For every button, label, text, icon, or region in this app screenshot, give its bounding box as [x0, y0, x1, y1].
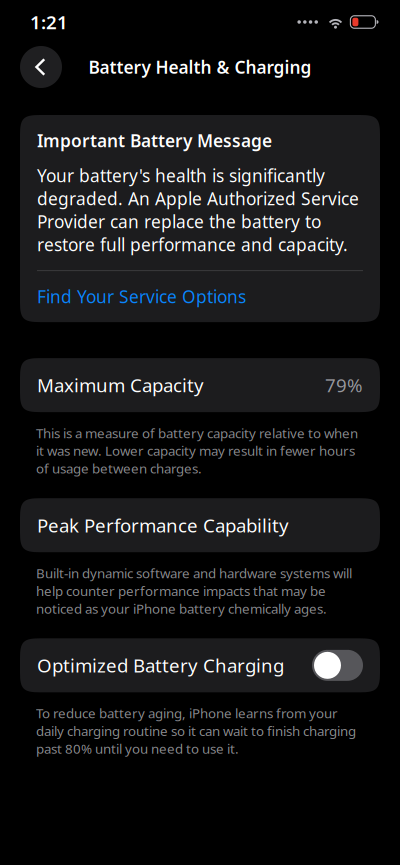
staticText: Important Battery Message — [37, 129, 272, 152]
staticText: Battery Health & Charging — [88, 55, 311, 78]
button[interactable]: Optimized Battery Charging — [0, 638, 400, 692]
staticText: Optimized Battery Charging — [37, 653, 284, 678]
staticText: Built-in dynamic software and hardware s… — [36, 564, 352, 617]
staticText: Find Your Service Options — [37, 285, 246, 308]
staticText: 79% — [325, 373, 363, 397]
button[interactable]: Find Your Service Options — [37, 285, 363, 308]
staticText: Maximum Capacity — [37, 373, 204, 397]
button[interactable]: Back — [20, 46, 62, 88]
staticText: Peak Performance Capability — [37, 513, 289, 538]
staticText: This is a measure of battery capacity re… — [36, 424, 358, 477]
staticText: Your battery's health is significantly d… — [37, 164, 359, 256]
button[interactable]: Maximum Capacity — [0, 358, 400, 412]
button[interactable]: Peak Performance Capability — [0, 498, 400, 552]
staticText: 1:21 — [30, 10, 68, 34]
staticText: To reduce battery aging, iPhone learns f… — [36, 704, 356, 757]
